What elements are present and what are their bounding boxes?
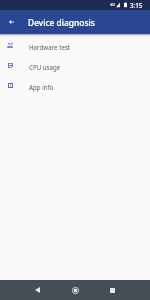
button[interactable]: Recent apps — [99, 280, 125, 300]
staticText: App info — [29, 83, 54, 91]
button[interactable]: App info — [0, 77, 150, 97]
button[interactable]: Back — [24, 280, 50, 300]
button[interactable]: Navigate up — [0, 10, 22, 34]
staticText: CPU usage — [29, 63, 61, 71]
staticText: Hardware test — [29, 43, 71, 51]
staticText: Device diagnosis — [28, 17, 95, 28]
button[interactable]: CPU usage — [0, 57, 150, 77]
button[interactable]: Hardware test — [0, 37, 150, 57]
staticText: 4G — [110, 2, 115, 7]
button[interactable]: Home — [62, 280, 88, 300]
staticText: 3:15 — [130, 1, 143, 9]
